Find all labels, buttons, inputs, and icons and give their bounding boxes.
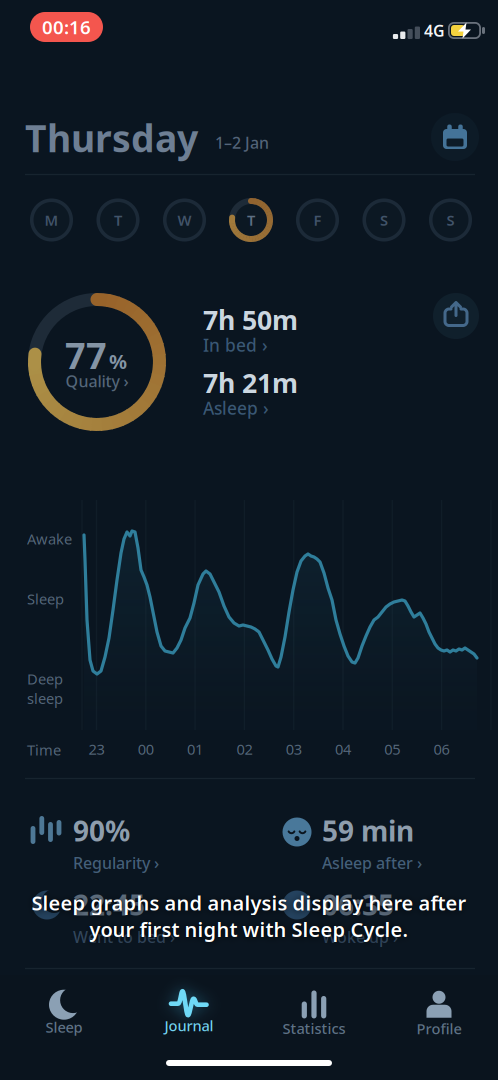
button[interactable]: Quality ›	[65, 370, 128, 392]
button[interactable]: 90%	[73, 812, 159, 873]
staticText: S	[446, 210, 454, 230]
staticText: 03	[286, 739, 302, 759]
button[interactable]: T	[96, 198, 139, 241]
staticText: T	[247, 210, 255, 230]
staticText: T	[114, 210, 122, 230]
staticText: 01	[187, 739, 203, 759]
button[interactable]: T	[229, 198, 272, 241]
staticText: Woke up ›	[322, 926, 398, 947]
button[interactable]: M	[30, 198, 73, 241]
button[interactable]: Profile	[416, 991, 461, 1038]
staticText: 04	[335, 739, 351, 759]
staticText: In bed ›	[203, 333, 268, 356]
staticText: 00	[138, 739, 154, 759]
button[interactable]: Sleep	[45, 990, 82, 1037]
staticText: Time	[27, 740, 61, 759]
staticText: Awake	[27, 529, 72, 548]
staticText: Asleep ›	[203, 396, 269, 419]
staticText: Profile	[416, 1019, 461, 1038]
staticText: Quality ›	[65, 370, 128, 392]
staticText: Journal	[164, 1016, 213, 1035]
staticText: Asleep after ›	[322, 852, 422, 873]
button[interactable]: 22:45	[73, 886, 175, 947]
staticText: W	[177, 210, 191, 230]
staticText: 23	[88, 739, 104, 759]
staticText: 7h 50m	[203, 302, 298, 337]
button[interactable]: 59 min	[322, 812, 422, 873]
staticText: 06:35	[322, 886, 394, 923]
staticText: Thursday	[25, 113, 198, 163]
staticText: 7h 21m	[203, 365, 298, 400]
button[interactable]: S	[362, 198, 405, 241]
staticText: 1–2 Jan	[215, 132, 269, 153]
staticText: Sleep graphs and analysis display here a…	[31, 889, 466, 916]
staticText: %	[109, 348, 127, 374]
button[interactable]: 7h 21m	[203, 365, 298, 419]
button[interactable]: F	[296, 198, 339, 241]
button[interactable]: Journal	[164, 987, 213, 1035]
staticText: 4G	[424, 20, 445, 41]
button[interactable]: Statistics	[282, 990, 345, 1038]
staticText: 77	[65, 331, 107, 379]
button[interactable]: S	[429, 198, 472, 241]
staticText: 06	[434, 739, 450, 759]
staticText: your first night with Sleep Cycle.	[89, 916, 408, 943]
staticText: Statistics	[282, 1018, 345, 1038]
staticText: 02	[236, 739, 252, 759]
staticText: Sleep	[27, 589, 64, 608]
staticText: 90%	[73, 812, 130, 849]
button[interactable]: 06:35	[322, 886, 398, 947]
staticText: M	[44, 210, 58, 230]
staticText: Went to bed ›	[73, 926, 175, 947]
staticText: 00:16	[42, 15, 91, 39]
button[interactable]: 7h 50m	[203, 302, 298, 356]
staticText: 22:45	[73, 886, 145, 923]
staticText: F	[313, 210, 321, 230]
button[interactable]: 00:16	[30, 12, 103, 42]
staticText: Sleep	[45, 1017, 82, 1037]
staticText: Regularity ›	[73, 852, 159, 873]
button[interactable]	[431, 113, 479, 161]
staticText: Deep sleep	[27, 669, 63, 708]
staticText: 05	[384, 739, 400, 759]
button[interactable]: W	[163, 198, 206, 241]
staticText: S	[380, 210, 388, 230]
button[interactable]	[433, 293, 479, 339]
staticText: 59 min	[322, 812, 414, 849]
